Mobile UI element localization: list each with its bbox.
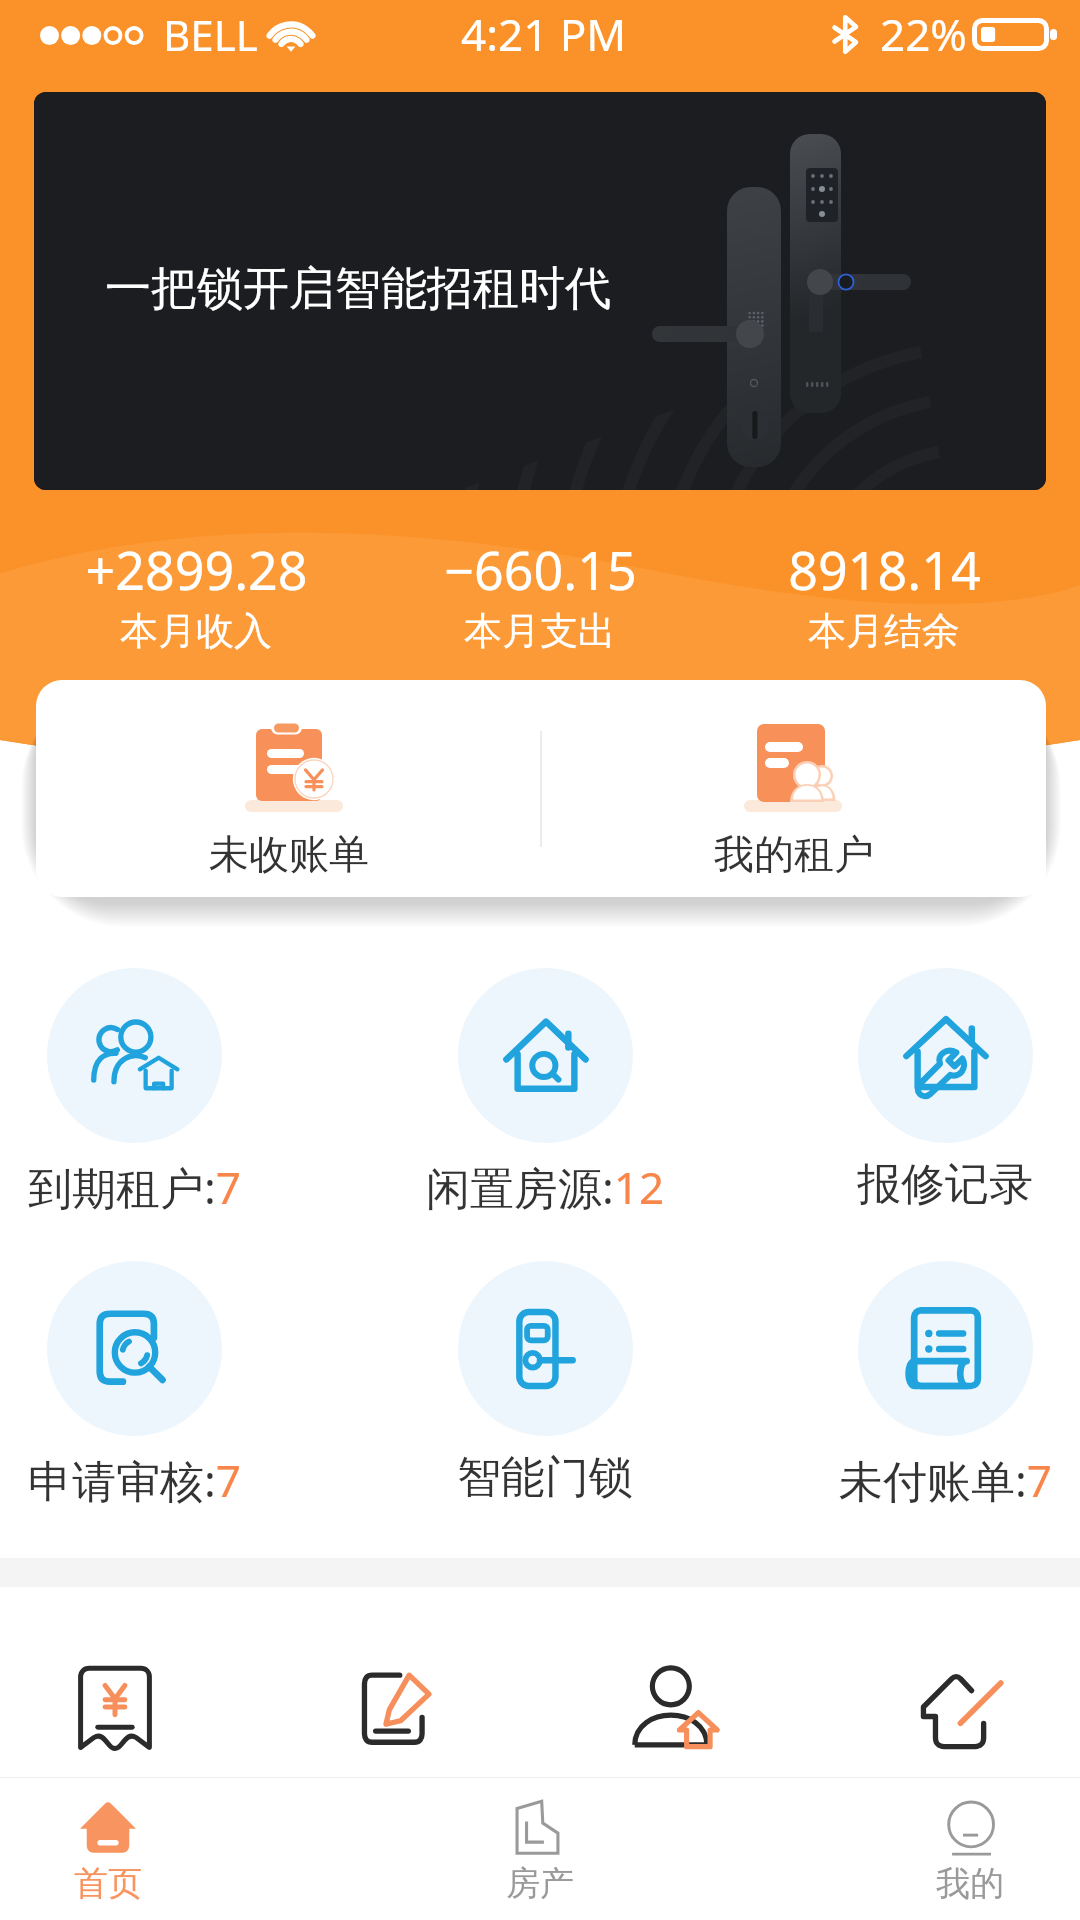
button[interactable]: 我的 bbox=[840, 1778, 1080, 1920]
staticText: 我的 bbox=[936, 1862, 1004, 1905]
staticText: 8918.14 bbox=[788, 534, 981, 605]
staticText: 闲置房源:12 bbox=[426, 1157, 665, 1217]
staticText: 22% bbox=[880, 4, 967, 64]
button[interactable]: Add property bbox=[853, 1587, 1073, 1777]
staticText: 本月结余 bbox=[808, 607, 960, 655]
staticText: BELL bbox=[163, 6, 258, 63]
button[interactable]: 一把锁开启智能招租时代 bbox=[34, 92, 1046, 490]
button[interactable]: New contract bbox=[288, 1587, 508, 1777]
button[interactable]: Bills bbox=[5, 1587, 225, 1777]
staticText: 本月支出 bbox=[464, 607, 616, 655]
button[interactable]: 未收账单 bbox=[36, 680, 541, 897]
staticText: 我的租户 bbox=[714, 829, 874, 879]
button[interactable]: 智能门锁 bbox=[365, 1261, 725, 1505]
button[interactable]: 申请审核:7 bbox=[0, 1261, 314, 1510]
staticText: −660.15 bbox=[444, 534, 637, 605]
staticText: 首页 bbox=[74, 1862, 142, 1905]
button[interactable]: 房产 bbox=[410, 1778, 670, 1920]
staticText: 房产 bbox=[506, 1862, 574, 1905]
staticText: 报修记录 bbox=[857, 1157, 1033, 1212]
button[interactable]: 报修记录 bbox=[765, 968, 1080, 1212]
staticText: 未付账单:7 bbox=[839, 1450, 1052, 1510]
staticText: 一把锁开启智能招租时代 bbox=[105, 260, 611, 318]
staticText: 到期租户:7 bbox=[28, 1157, 241, 1217]
staticText: 未收账单 bbox=[209, 829, 369, 879]
staticText: 申请审核:7 bbox=[28, 1450, 241, 1510]
staticText: 4:21 PM bbox=[461, 4, 627, 64]
staticText: 本月收入 bbox=[120, 607, 272, 655]
button[interactable]: 未付账单:7 bbox=[765, 1261, 1080, 1510]
staticText: 智能门锁 bbox=[457, 1450, 633, 1505]
staticText: +2899.28 bbox=[85, 534, 308, 605]
button[interactable]: 到期租户:7 bbox=[0, 968, 314, 1217]
button[interactable]: 闲置房源:12 bbox=[365, 968, 725, 1217]
button[interactable]: 首页 bbox=[0, 1778, 238, 1920]
button[interactable]: 我的租户 bbox=[541, 680, 1046, 897]
button[interactable]: Add tenant bbox=[566, 1587, 786, 1777]
